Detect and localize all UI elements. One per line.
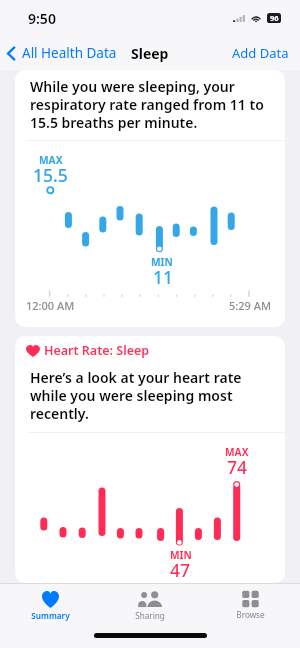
staticText: 74 [227,455,248,479]
staticText: Summary [31,610,70,621]
staticText: Heart Rate: Sleep [44,342,150,359]
staticText: Sharing [135,610,165,621]
staticText: MIN [170,548,192,562]
staticText: Add Data [232,44,289,62]
staticText: 12:00 AM [26,298,75,313]
button[interactable]: Sharing [100,584,200,623]
staticText: MIN [151,255,173,269]
staticText: All Health Data [22,44,117,62]
staticText: Browse [236,609,265,620]
staticText: Sleep [131,44,169,63]
button[interactable]: While you were sleeping, your respirator… [15,70,285,327]
staticText: 5:29 AM [229,298,272,313]
staticText: 15.5 [33,163,68,187]
button[interactable]: Summary [0,584,100,623]
button[interactable]: Heart Rate: Sleep [15,336,285,583]
button[interactable]: Browse [200,584,300,622]
staticText: MAX [39,153,63,167]
staticText: MAX [225,445,249,459]
staticText: 96 [270,13,279,23]
button[interactable]: Add Data [224,40,300,66]
button[interactable]: All Health Data [0,40,123,66]
staticText: 9:50 [28,9,56,28]
staticText: While you were sleeping, your respirator… [30,77,270,132]
staticText: 11 [153,265,174,289]
staticText: Here’s a look at your heart rate while y… [30,368,270,423]
staticText: 47 [170,558,191,582]
